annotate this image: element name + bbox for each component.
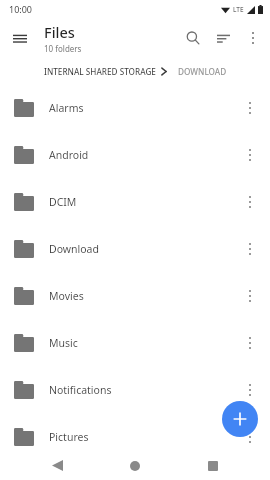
button[interactable]: DCIM <box>0 178 270 225</box>
button[interactable]: Sort <box>208 23 238 53</box>
button[interactable]: Home <box>120 451 150 480</box>
button[interactable]: More options for Alarms <box>234 92 266 124</box>
button[interactable]: More options for Music <box>234 327 266 359</box>
button[interactable]: Notifications <box>0 366 270 413</box>
button[interactable]: Android <box>0 131 270 178</box>
button[interactable]: DOWNLOAD <box>178 66 227 77</box>
button[interactable]: Open navigation drawer <box>4 22 36 54</box>
staticText: DOWNLOAD <box>178 66 227 77</box>
staticText: Download <box>49 242 234 256</box>
staticText: Notifications <box>49 383 234 397</box>
button[interactable]: More options <box>238 23 268 53</box>
staticText: Pictures <box>49 430 234 444</box>
button[interactable]: Back <box>42 451 72 480</box>
staticText: Files <box>44 22 75 42</box>
staticText: LTE <box>233 5 244 14</box>
button[interactable]: Search <box>178 23 208 53</box>
button[interactable]: INTERNAL SHARED STORAGE <box>44 66 156 77</box>
button[interactable]: More options for Movies <box>234 280 266 312</box>
button[interactable]: Music <box>0 319 270 366</box>
button[interactable]: Download <box>0 225 270 272</box>
staticText: Music <box>49 336 234 350</box>
button[interactable]: Pictures <box>0 413 270 460</box>
staticText: Movies <box>49 289 234 303</box>
button[interactable]: Recent apps <box>198 451 228 480</box>
button[interactable]: Create new <box>222 401 258 437</box>
staticText: INTERNAL SHARED STORAGE <box>44 66 156 77</box>
staticText: 10 folders <box>44 43 82 54</box>
button[interactable]: More options for DCIM <box>234 186 266 218</box>
button[interactable]: More options for Notifications <box>234 374 266 406</box>
staticText: DCIM <box>49 195 234 209</box>
staticText: Alarms <box>49 101 234 115</box>
staticText: Android <box>49 148 234 162</box>
button[interactable]: More options for Pictures <box>234 421 266 453</box>
button[interactable]: More options for Download <box>234 233 266 265</box>
staticText: Podcasts <box>49 463 234 477</box>
staticText: 10:00 <box>9 3 33 15</box>
button[interactable]: Movies <box>0 272 270 319</box>
button[interactable]: Alarms <box>0 84 270 131</box>
button[interactable]: Podcasts <box>0 460 270 480</box>
button[interactable]: More options for Android <box>234 139 266 171</box>
